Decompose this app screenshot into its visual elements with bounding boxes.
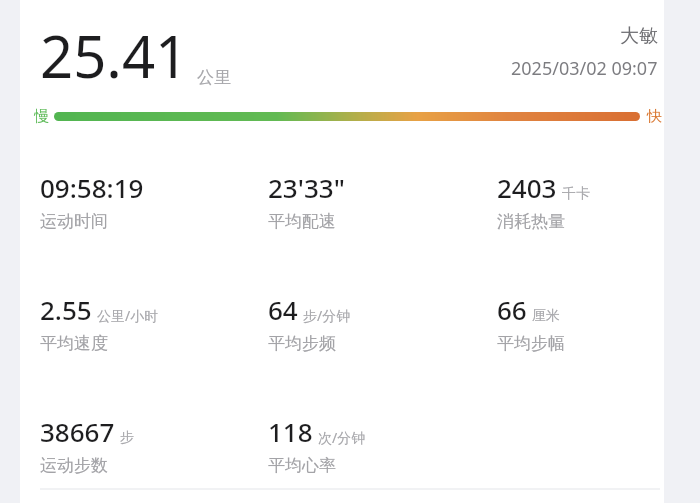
- staticText: 64: [268, 292, 298, 327]
- staticText: 运动步数: [40, 455, 108, 476]
- staticText: 平均速度: [40, 333, 108, 354]
- staticText: 118: [268, 414, 313, 449]
- staticText: 步: [120, 429, 134, 447]
- button[interactable]: 25.41: [40, 16, 231, 95]
- staticText: 23'33": [268, 170, 345, 205]
- button[interactable]: 64: [268, 292, 351, 354]
- staticText: 慢: [34, 107, 49, 126]
- staticText: 66: [497, 292, 527, 327]
- staticText: 平均配速: [268, 211, 336, 232]
- staticText: 运动时间: [40, 211, 108, 232]
- staticText: 38667: [40, 414, 115, 449]
- staticText: 消耗热量: [497, 211, 565, 232]
- button[interactable]: 66: [497, 292, 565, 354]
- button[interactable]: 大敏: [511, 24, 658, 81]
- staticText: 平均心率: [268, 455, 336, 476]
- staticText: 2.55: [40, 292, 92, 327]
- button[interactable]: 2403: [497, 170, 590, 232]
- button[interactable]: 2.55: [40, 292, 159, 354]
- button[interactable]: 23'33": [268, 170, 345, 232]
- staticText: 25.41: [40, 16, 189, 95]
- staticText: 平均步频: [268, 333, 336, 354]
- staticText: 大敏: [620, 24, 658, 48]
- staticText: 2403: [497, 170, 557, 205]
- button[interactable]: 118: [268, 414, 366, 476]
- button[interactable]: 38667: [40, 414, 134, 476]
- staticText: 2025/03/02 09:07: [511, 56, 658, 81]
- staticText: 千卡: [562, 185, 590, 203]
- staticText: 快: [647, 107, 662, 126]
- staticText: 厘米: [532, 307, 560, 325]
- staticText: 公里: [197, 67, 231, 88]
- staticText: 09:58:19: [40, 170, 144, 205]
- staticText: 次/分钟: [318, 428, 366, 447]
- staticText: 公里/小时: [97, 306, 159, 325]
- button[interactable]: 09:58:19: [40, 170, 144, 232]
- staticText: 步/分钟: [303, 306, 351, 325]
- staticText: 平均步幅: [497, 333, 565, 354]
